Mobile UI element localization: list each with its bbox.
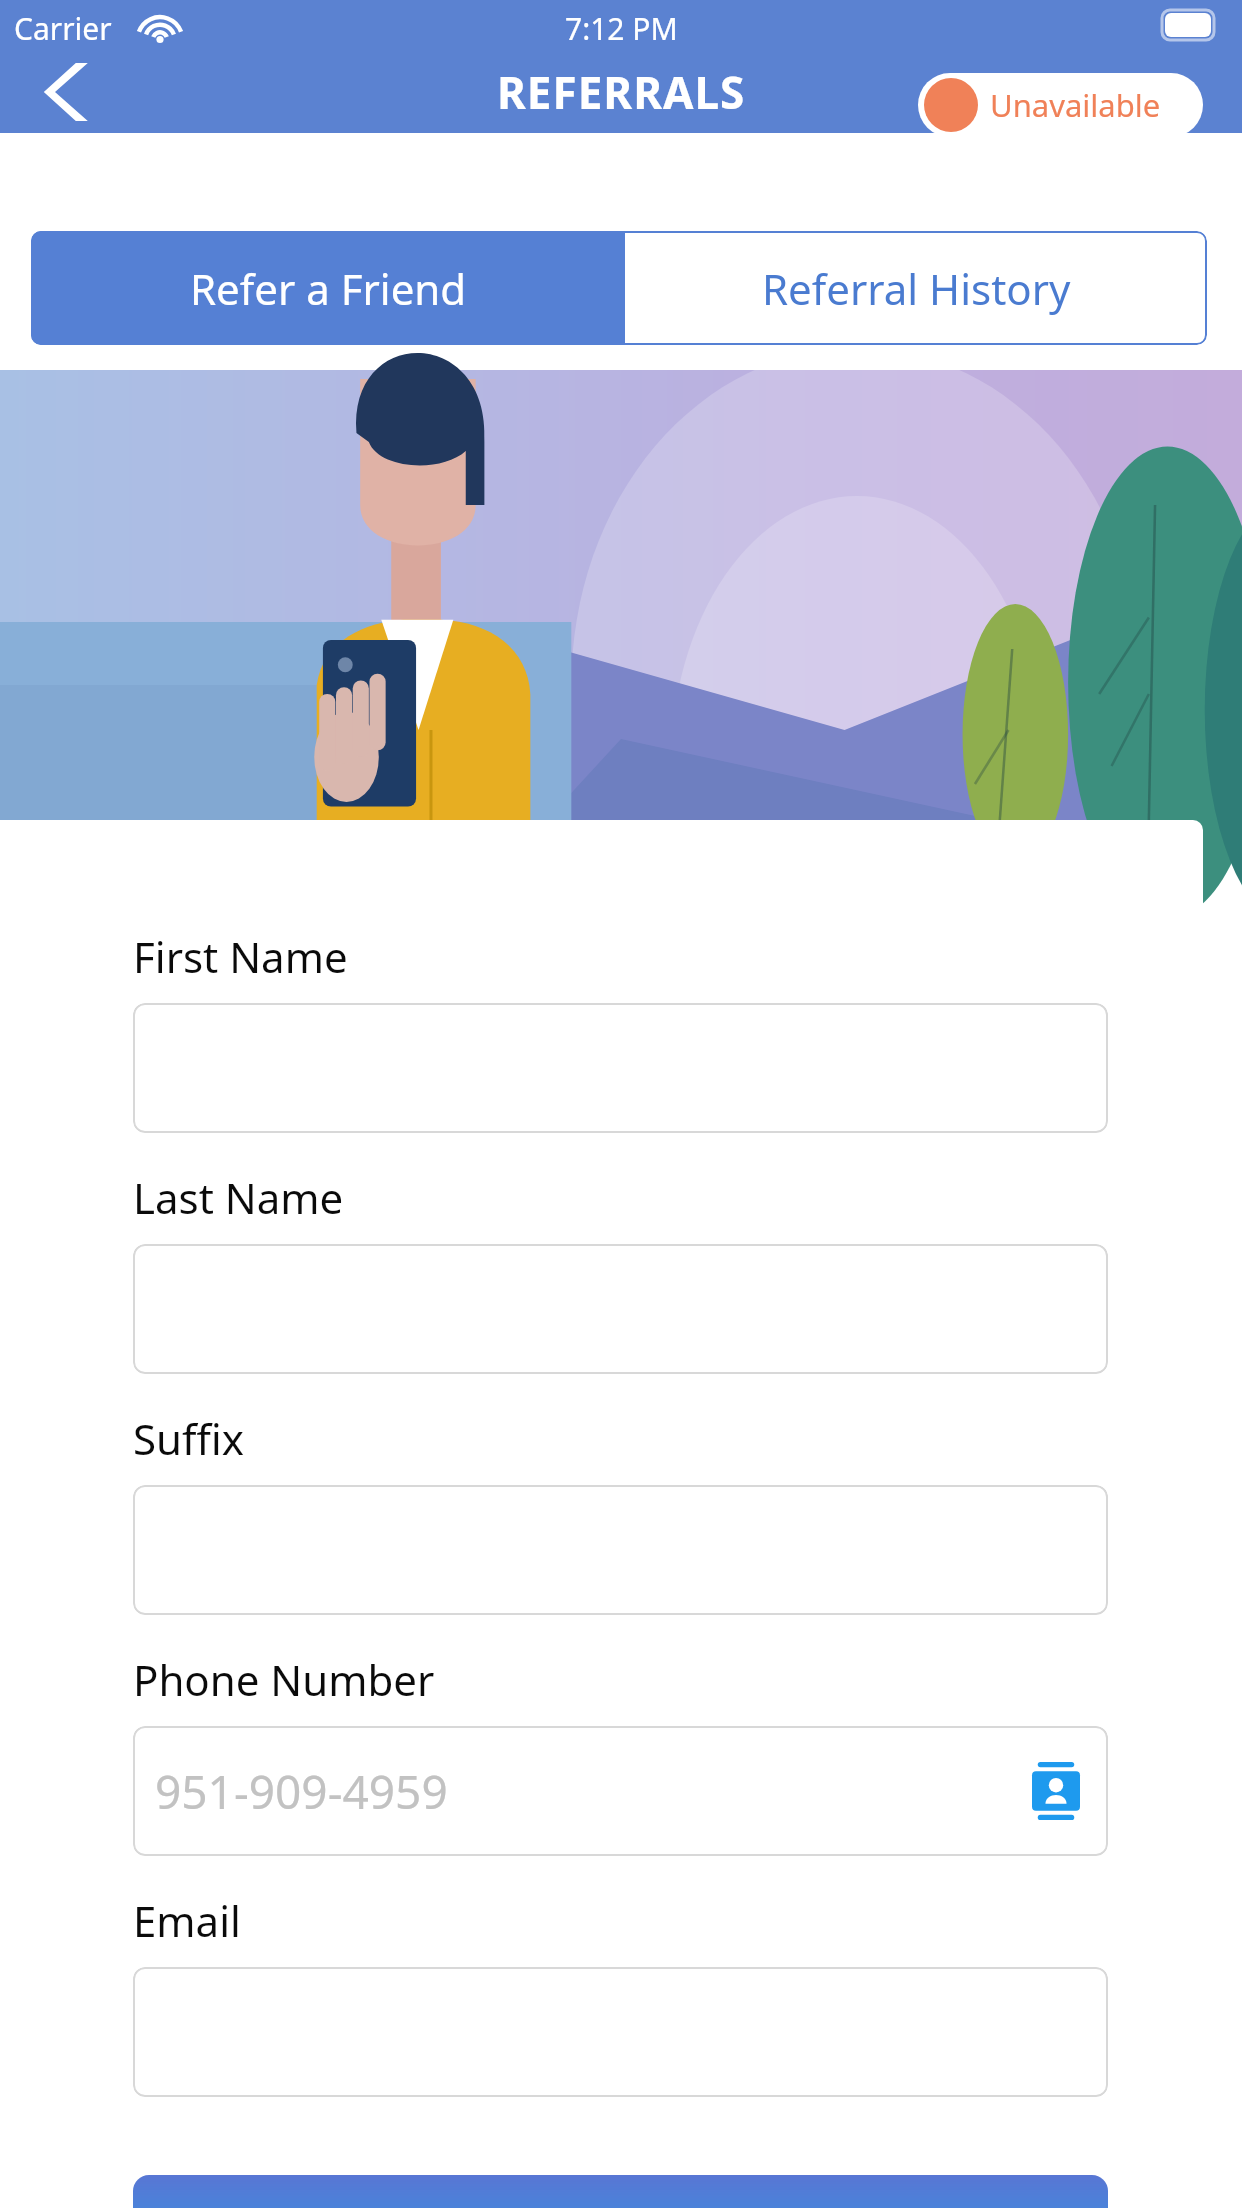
staticText: Referral History [762, 260, 1071, 317]
staticText: Suffix [133, 1410, 244, 1467]
staticText: Phone Number [133, 1651, 435, 1708]
staticText: First Name [133, 928, 348, 985]
staticText: Carrier [14, 8, 112, 49]
other: Choose contact [1032, 1762, 1080, 1820]
staticText: 951-909-4959 [155, 1760, 448, 1823]
staticText: Last Name [133, 1169, 344, 1226]
button[interactable]: Unavailable [918, 73, 1203, 137]
button[interactable]: Refer Friend [133, 2175, 1108, 2208]
button[interactable]: Referral History [625, 231, 1207, 345]
button[interactable] [133, 1485, 1108, 1615]
button[interactable] [133, 1967, 1108, 2097]
staticText: REFERRALS [497, 62, 746, 122]
button[interactable]: Back [28, 52, 114, 132]
button[interactable]: 951-909-4959 [133, 1726, 1108, 1856]
staticText: Refer a Friend [190, 260, 467, 317]
staticText: Email [133, 1892, 241, 1949]
staticText: Unavailable [990, 84, 1161, 126]
button[interactable] [133, 1003, 1108, 1133]
button[interactable]: Refer a Friend [31, 231, 625, 345]
button[interactable] [133, 1244, 1108, 1374]
staticText: 7:12 PM [565, 8, 678, 49]
